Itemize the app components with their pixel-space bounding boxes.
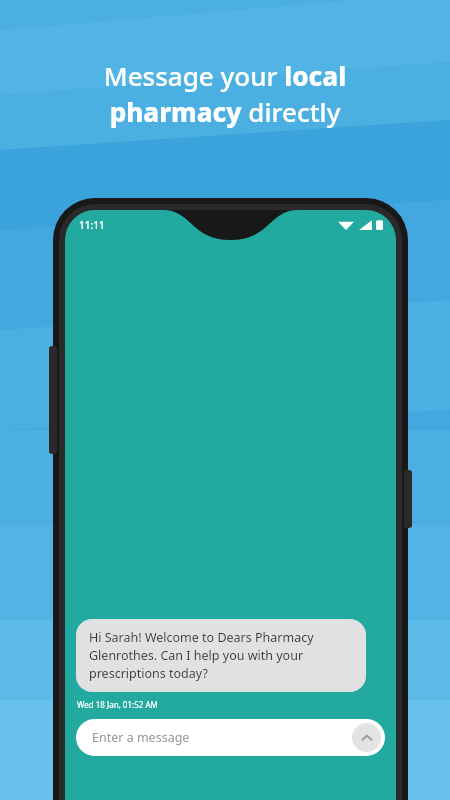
button[interactable]: Hi Sarah! Welcome to Dears Pharmacy Glen…	[76, 619, 366, 692]
button[interactable]: Send message	[352, 723, 381, 752]
button[interactable]: Enter a message	[76, 719, 385, 756]
staticText: Enter a message	[92, 729, 190, 746]
staticText: Hi Sarah! Welcome to Dears Pharmacy Glen…	[89, 629, 353, 682]
staticText: Message your local pharmacy directly	[40, 58, 410, 130]
staticText: 11:11	[79, 218, 105, 232]
staticText: Wed 18 Jan, 01:52 AM	[77, 699, 158, 710]
